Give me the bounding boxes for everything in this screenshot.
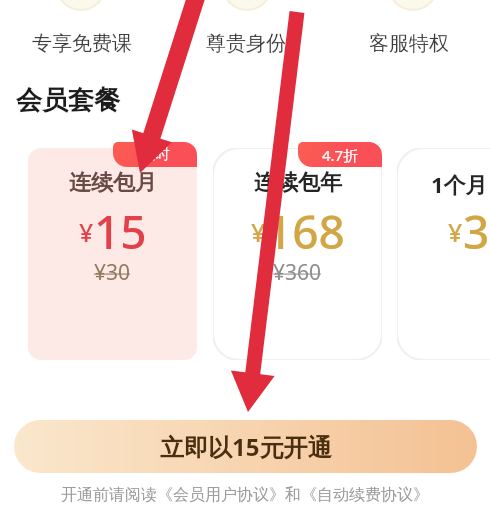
button[interactable]: 客服特权	[327, 31, 490, 56]
button[interactable]: 连续包年	[213, 148, 382, 360]
button[interactable]: 连续包月	[28, 148, 197, 360]
staticText: 15	[94, 200, 147, 263]
staticText: 立即以15元开通	[160, 430, 332, 463]
staticText: ¥30	[94, 258, 131, 287]
button[interactable]: 立即以15元开通	[14, 420, 477, 473]
staticText: 尊贵身份	[206, 31, 286, 56]
staticText: 连续包年	[254, 169, 342, 197]
staticText: ¥	[251, 215, 266, 249]
staticText: ¥	[79, 215, 94, 249]
button[interactable]: 限时	[113, 142, 197, 167]
staticText: 1个月	[431, 169, 488, 199]
button[interactable]: 专享免费课	[0, 31, 164, 56]
button[interactable]: 1个月	[397, 148, 490, 360]
button[interactable]: 尊贵身份	[164, 31, 327, 56]
button[interactable]: 4.7折	[298, 142, 382, 167]
staticText: ¥360	[273, 258, 322, 287]
staticText: 专享免费课	[32, 31, 132, 56]
staticText: 30	[463, 200, 490, 263]
staticText: 4.7折	[322, 145, 359, 165]
staticText: 会员套餐	[16, 84, 120, 117]
staticText: 限时	[140, 145, 170, 164]
staticText: ¥	[448, 215, 463, 249]
staticText: 开通前请阅读《会员用户协议》和《自动续费协议》	[61, 485, 429, 505]
staticText: 连续包月	[69, 169, 157, 197]
staticText: 客服特权	[369, 31, 449, 56]
staticText: 168	[266, 200, 345, 263]
